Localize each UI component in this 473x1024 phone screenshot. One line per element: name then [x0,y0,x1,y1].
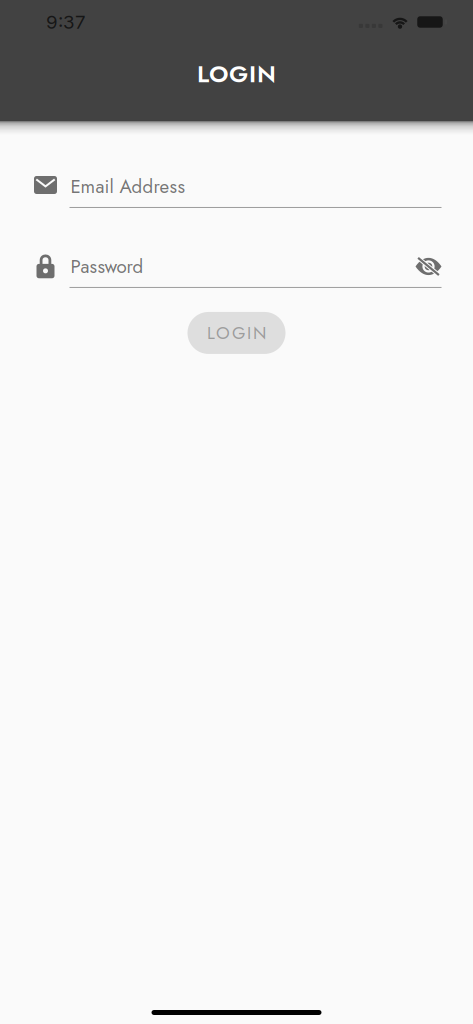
staticText: 9:37 [46,11,86,33]
button[interactable]: LOGIN [187,312,285,354]
staticText: Email Address [70,173,185,200]
button[interactable]: Show password [415,255,441,277]
staticText: Password [70,253,143,280]
staticText: LOGIN [207,320,266,345]
staticText: LOGIN [197,57,276,91]
